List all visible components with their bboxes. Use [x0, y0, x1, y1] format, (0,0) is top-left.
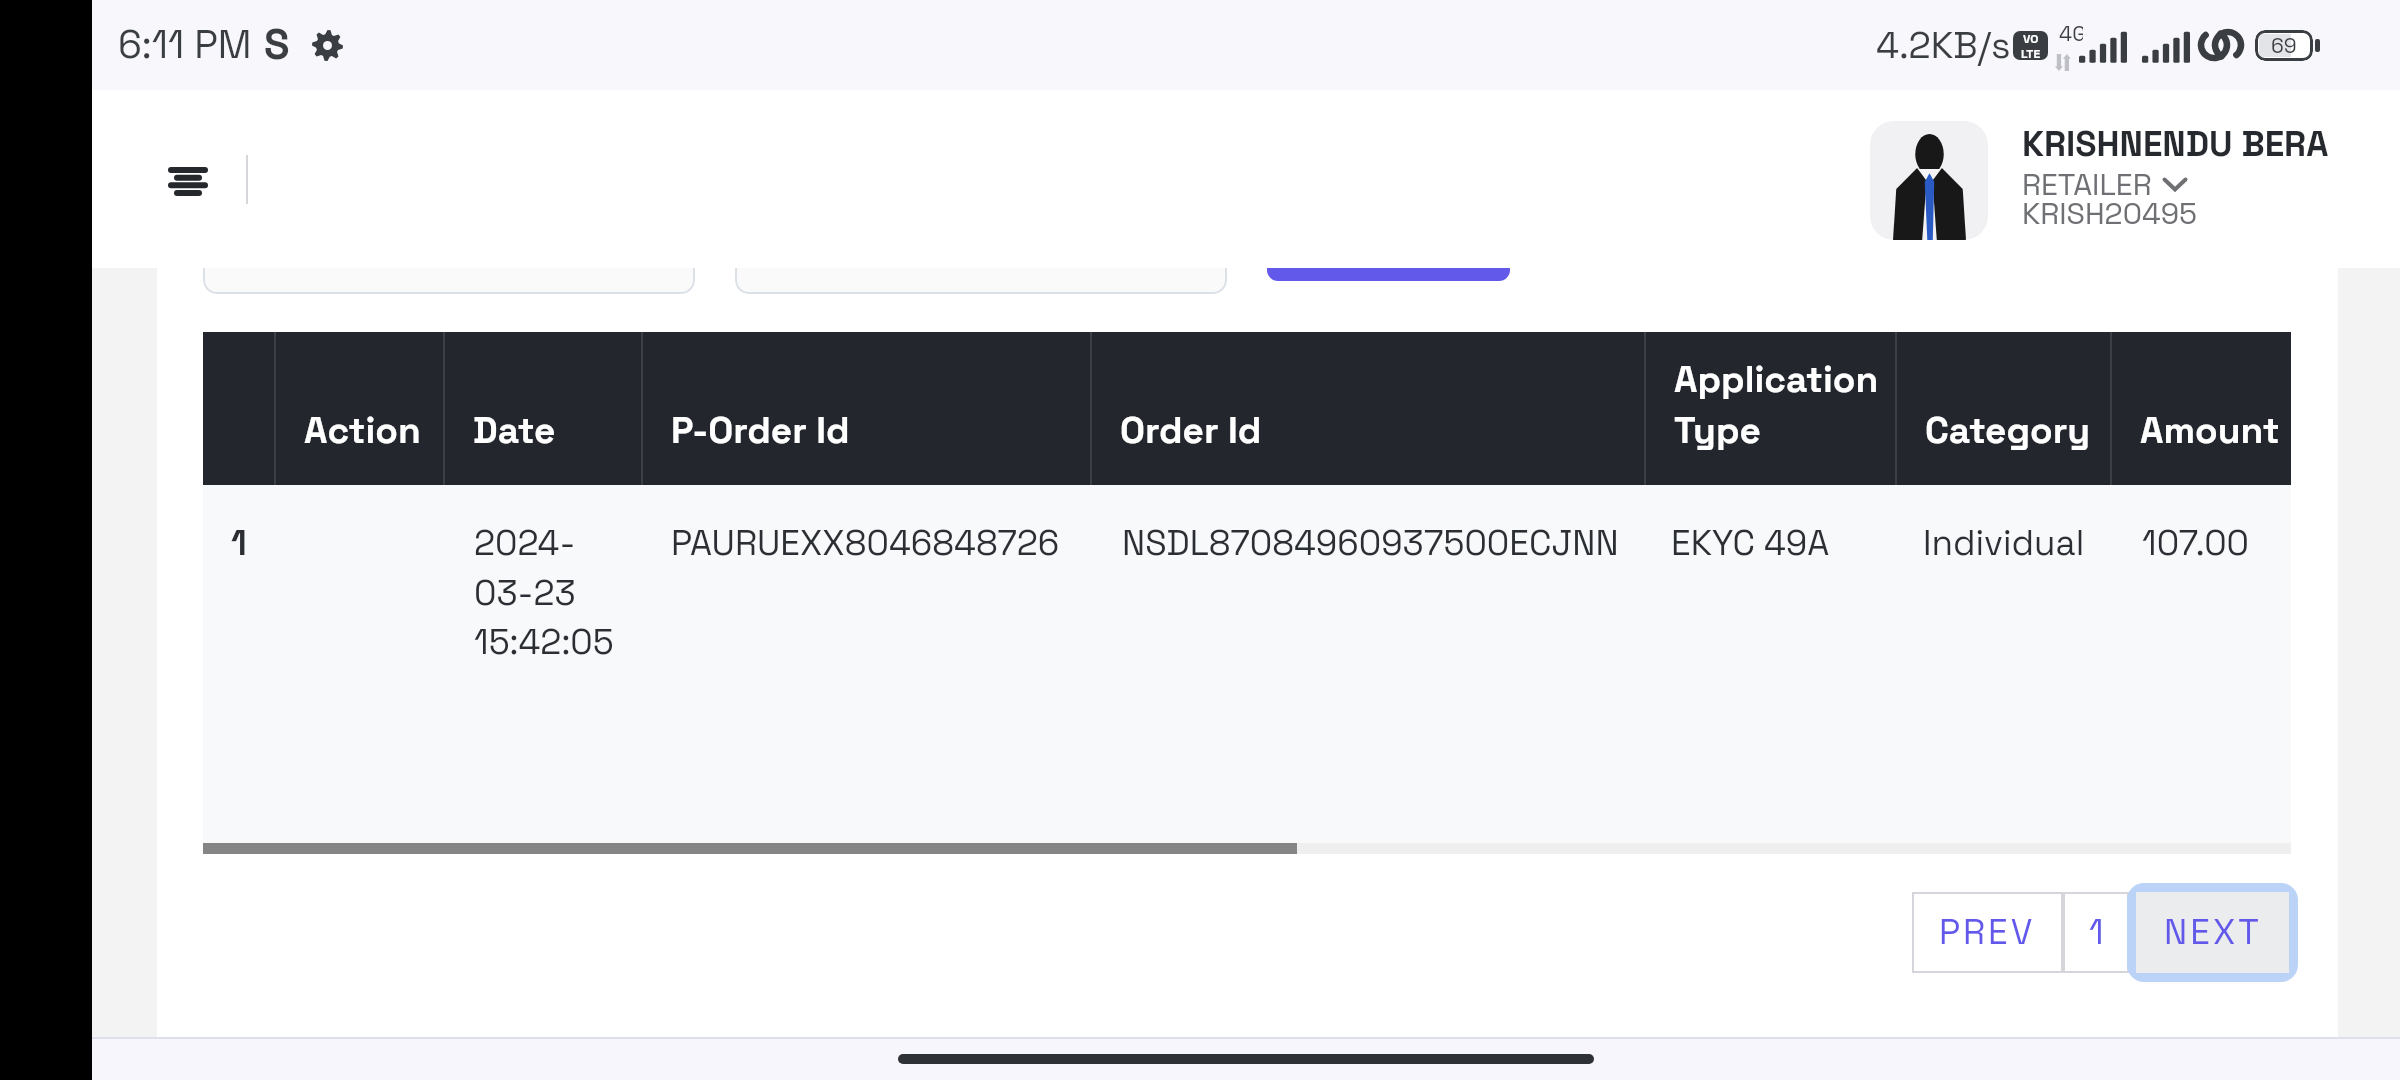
staticText: Amount	[2140, 407, 2280, 454]
button[interactable]: 1	[2063, 892, 2129, 973]
staticText: Order Id	[1120, 407, 1262, 454]
staticText: P-Order Id	[671, 407, 850, 454]
staticText: 107.00	[2142, 521, 2250, 566]
staticText: KRISH20495	[2022, 194, 2198, 232]
staticText: 6:11 PM	[118, 20, 252, 70]
staticText: NSDL87084960937500ECJNN	[1122, 521, 1619, 566]
button[interactable]: NEXT	[2136, 892, 2289, 973]
staticText: PAURUEXX8046848726	[671, 521, 1060, 566]
button[interactable]: 1	[203, 485, 2291, 843]
staticText: S	[264, 18, 290, 72]
staticText: LTE	[2021, 46, 2041, 60]
staticText: Category	[1925, 407, 2091, 454]
staticText: 4G	[2059, 20, 2083, 47]
button[interactable]: Search	[1267, 268, 1510, 281]
staticText: 4.2KB/s	[1876, 22, 2011, 69]
staticText: 69	[2271, 32, 2297, 59]
staticText: RETAILER	[2022, 165, 2152, 203]
staticText: 1	[2089, 910, 2104, 955]
button[interactable]: PREV	[1912, 892, 2063, 973]
staticText: Application Type	[1674, 356, 1879, 454]
staticText: 1	[231, 521, 247, 566]
staticText: Action	[304, 407, 421, 454]
button[interactable]: Open navigation menu	[155, 146, 221, 216]
staticText: VO	[2023, 31, 2039, 46]
staticText: PREV	[1939, 910, 2036, 955]
staticText: EKYC 49A	[1671, 521, 1830, 566]
button[interactable]: Account: KRISHNENDU BERA, RETAILER	[1870, 114, 2328, 244]
button[interactable]: To date filter	[735, 268, 1227, 294]
staticText: 2024- 03-23 15:42:05	[474, 521, 614, 664]
staticText: NEXT	[2164, 910, 2262, 955]
button[interactable]: From date filter	[203, 268, 695, 294]
staticText: KRISHNENDU BERA	[2022, 122, 2329, 167]
staticText: Date	[473, 407, 556, 454]
staticText: Individual	[1923, 521, 2085, 566]
